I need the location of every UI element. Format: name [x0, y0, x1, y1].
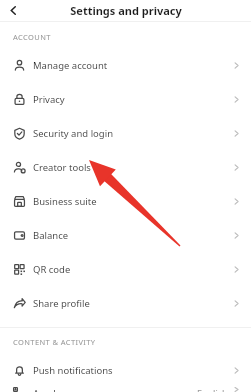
staticText: CONTENT & ACTIVITY	[13, 337, 96, 347]
button[interactable]: App language	[0, 387, 251, 392]
button[interactable]: Manage account	[0, 48, 251, 82]
button[interactable]: Privacy	[0, 82, 251, 116]
staticText: Business suite	[33, 195, 97, 208]
staticText: QR code	[33, 263, 71, 276]
button[interactable]: QR code	[0, 252, 251, 286]
staticText: English	[197, 387, 228, 392]
staticText: Creator tools	[33, 161, 91, 174]
staticText: Security and login	[33, 127, 113, 140]
button[interactable]: Business suite	[0, 184, 251, 218]
button[interactable]: Push notifications	[0, 353, 251, 387]
button[interactable]: Security and login	[0, 116, 251, 150]
staticText: ACCOUNT	[13, 32, 51, 42]
staticText: App language	[33, 387, 96, 392]
button[interactable]: Creator tools	[0, 150, 251, 184]
staticText: Privacy	[33, 93, 65, 106]
staticText: Manage account	[33, 59, 108, 72]
staticText: Push notifications	[33, 364, 113, 377]
staticText: Share profile	[33, 297, 90, 310]
staticText: Settings and privacy	[70, 3, 182, 18]
staticText: Balance	[33, 229, 69, 242]
button[interactable]: Back	[0, 0, 26, 21]
button[interactable]: Share profile	[0, 286, 251, 320]
button[interactable]: Balance	[0, 218, 251, 252]
